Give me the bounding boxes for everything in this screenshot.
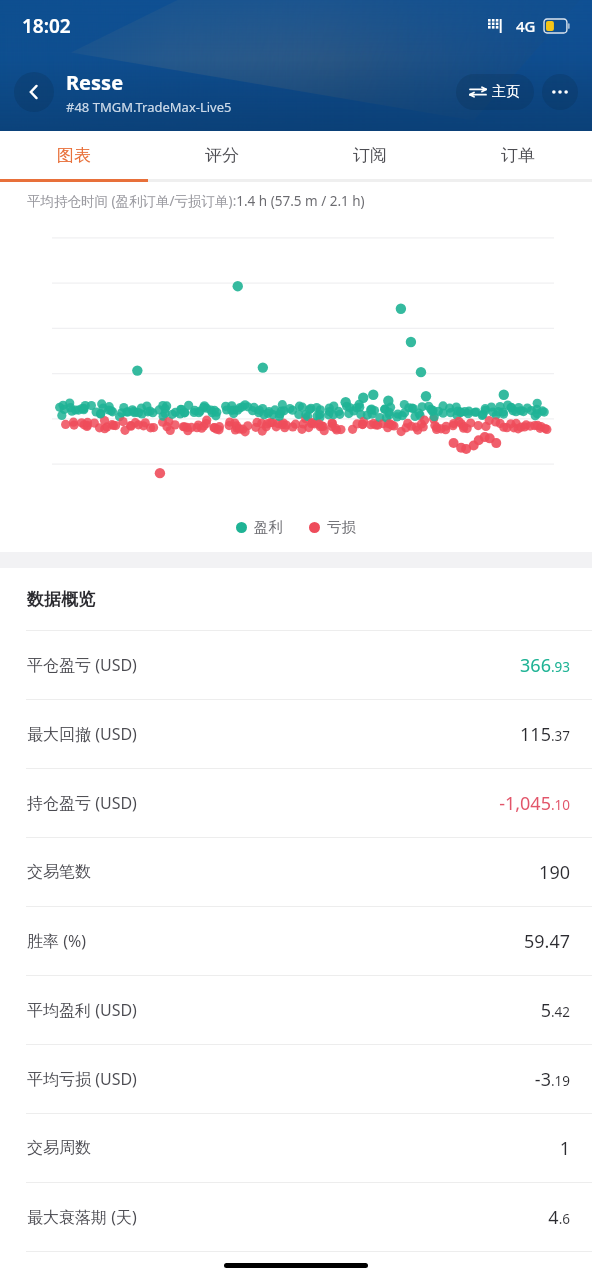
staticText: 数据概览 [27,589,95,610]
staticText: 订阅 [353,145,387,166]
button[interactable]: 平均亏损 (USD) [0,1045,592,1113]
staticText: 平均持仓时间 (盈利订单/亏损订单):1.4 h (57.5 m / 2.1 h… [27,192,365,210]
staticText: 59.47 [523,929,570,954]
button[interactable]: 平仓盈亏 (USD) [0,631,592,699]
staticText: 主页 [492,83,520,101]
button[interactable]: 主页 [456,74,534,110]
staticText: 115.37 [520,722,570,747]
staticText: 366.93 [520,653,570,678]
staticText: 订单 [501,145,535,166]
button[interactable]: 图表 [0,131,148,179]
button[interactable]: More options [542,74,578,110]
staticText: #48 TMGM.TradeMax-Live5 [66,98,232,116]
staticText: 最大回撤 (USD) [27,723,137,745]
button[interactable]: 订单 [444,131,592,179]
staticText: 持仓盈亏 (USD) [27,792,137,814]
staticText: 4.6 [548,1205,570,1230]
button[interactable]: 最大衰落期 (天) [0,1183,592,1251]
staticText: 平仓盈亏 (USD) [27,654,137,676]
button[interactable]: Back [14,72,54,112]
staticText: -1,045.10 [499,791,570,816]
staticText: 平均亏损 (USD) [27,1068,137,1090]
staticText: 最大衰落期 (天) [27,1206,137,1228]
staticText: 1 [559,1136,570,1161]
button[interactable]: 最大回撤 (USD) [0,700,592,768]
button[interactable]: 平均盈利 (USD) [0,976,592,1044]
staticText: 交易笔数 [27,862,91,882]
staticText: 交易周数 [27,1138,91,1158]
button[interactable]: 评分 [148,131,296,179]
staticText: -3.19 [534,1067,570,1092]
staticText: 胜率 (%) [27,930,87,952]
staticText: 盈利 [254,518,283,536]
button[interactable]: 交易周数 [0,1114,592,1182]
staticText: 平均盈利 (USD) [27,999,137,1021]
staticText: 4G [516,16,536,36]
button[interactable]: 持仓盈亏 (USD) [0,769,592,837]
staticText: 5.42 [540,998,570,1023]
button[interactable]: 交易笔数 [0,838,592,906]
staticText: 18:02 [22,13,71,39]
staticText: 190 [539,860,570,885]
button[interactable]: 胜率 (%) [0,907,592,975]
staticText: 评分 [205,145,239,166]
button[interactable]: 订阅 [296,131,444,179]
staticText: Resse [66,69,124,96]
staticText: 亏损 [327,518,356,536]
staticText: 图表 [57,145,91,166]
